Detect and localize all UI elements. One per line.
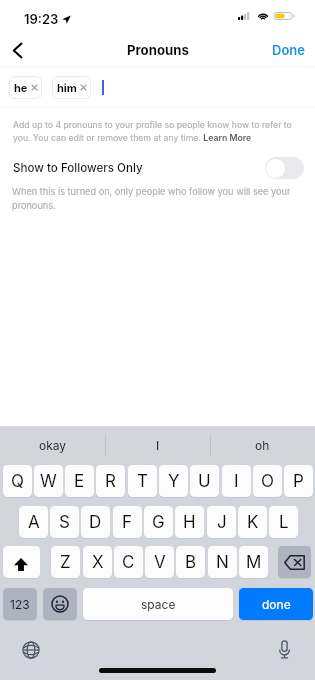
button[interactable]: Back — [1, 34, 33, 66]
button[interactable]: Y — [159, 465, 188, 497]
staticText: done — [262, 597, 291, 612]
button[interactable]: U — [190, 465, 219, 497]
staticText: Z — [60, 552, 71, 573]
button[interactable]: K — [238, 506, 267, 538]
button[interactable]: Backspace — [278, 546, 311, 578]
staticText: G — [152, 512, 165, 533]
staticText: X — [92, 552, 104, 573]
staticText: 123 — [10, 597, 30, 612]
button[interactable]: done — [239, 588, 313, 620]
staticText: Q — [11, 471, 24, 492]
button[interactable]: S — [50, 506, 79, 538]
button[interactable]: oh — [210, 426, 315, 464]
button[interactable]: space — [83, 588, 233, 620]
staticText: When this is turned on, only people who … — [12, 186, 292, 211]
staticText: he — [14, 81, 28, 94]
staticText: okay — [39, 438, 67, 453]
button[interactable]: I — [105, 426, 210, 464]
button[interactable]: P — [284, 465, 313, 497]
button[interactable]: I — [222, 465, 251, 497]
button[interactable]: V — [145, 546, 174, 578]
staticText: 19:23 — [24, 11, 59, 27]
button[interactable]: 123 — [3, 588, 37, 620]
staticText: J — [217, 512, 227, 533]
button[interactable]: C — [114, 546, 143, 578]
button[interactable]: E — [65, 465, 94, 497]
button[interactable]: Done — [264, 36, 315, 64]
staticText: Add up to 4 pronouns to your profile so … — [13, 120, 305, 143]
staticText: R — [105, 471, 116, 492]
button[interactable]: O — [253, 465, 282, 497]
staticText: F — [122, 512, 133, 533]
staticText: P — [293, 471, 304, 492]
button[interactable]: he — [9, 76, 42, 99]
button[interactable]: him — [52, 76, 91, 99]
button[interactable]: Switch keyboard language — [18, 637, 43, 662]
button[interactable]: A — [19, 506, 48, 538]
staticText: L — [279, 512, 289, 533]
staticText: M — [246, 552, 262, 573]
button[interactable]: L — [269, 506, 298, 538]
staticText: C — [122, 552, 135, 573]
button[interactable]: M — [239, 546, 268, 578]
staticText: Pronouns — [127, 42, 189, 58]
staticText: I — [156, 438, 160, 453]
button[interactable]: Show to Followers Only — [0, 156, 315, 186]
button[interactable]: Shift — [3, 546, 40, 578]
button[interactable]: Z — [51, 546, 80, 578]
staticText: V — [154, 552, 166, 573]
button[interactable]: F — [113, 506, 142, 538]
staticText: B — [185, 552, 197, 573]
staticText: Show to Followers Only — [13, 161, 143, 175]
staticText: U — [198, 471, 211, 492]
button[interactable]: T — [128, 465, 157, 497]
staticText: E — [74, 471, 85, 492]
staticText: T — [137, 471, 148, 492]
button[interactable]: Dictation — [272, 637, 297, 662]
button[interactable]: X — [83, 546, 112, 578]
button[interactable]: G — [144, 506, 173, 538]
staticText: N — [216, 552, 229, 573]
staticText: D — [89, 512, 102, 533]
staticText: I — [234, 471, 239, 492]
staticText: K — [247, 512, 259, 533]
staticText: him — [57, 81, 77, 94]
staticText: A — [28, 512, 40, 533]
staticText: W — [40, 471, 57, 492]
button[interactable]: D — [81, 506, 110, 538]
staticText: space — [141, 597, 176, 612]
button[interactable]: Q — [3, 465, 32, 497]
staticText: H — [183, 512, 196, 533]
button[interactable]: Emoji — [43, 588, 77, 620]
staticText: S — [59, 512, 70, 533]
staticText: oh — [255, 438, 270, 453]
button[interactable]: Add up to 4 pronouns to your profile so … — [13, 120, 305, 143]
staticText: Y — [168, 471, 180, 492]
button[interactable]: B — [176, 546, 205, 578]
button[interactable]: R — [96, 465, 125, 497]
button[interactable]: okay — [0, 426, 105, 464]
staticText: O — [261, 471, 274, 492]
staticText: Done — [272, 42, 305, 58]
button[interactable]: N — [208, 546, 237, 578]
button[interactable]: H — [175, 506, 204, 538]
button[interactable]: J — [207, 506, 236, 538]
button[interactable]: W — [34, 465, 63, 497]
